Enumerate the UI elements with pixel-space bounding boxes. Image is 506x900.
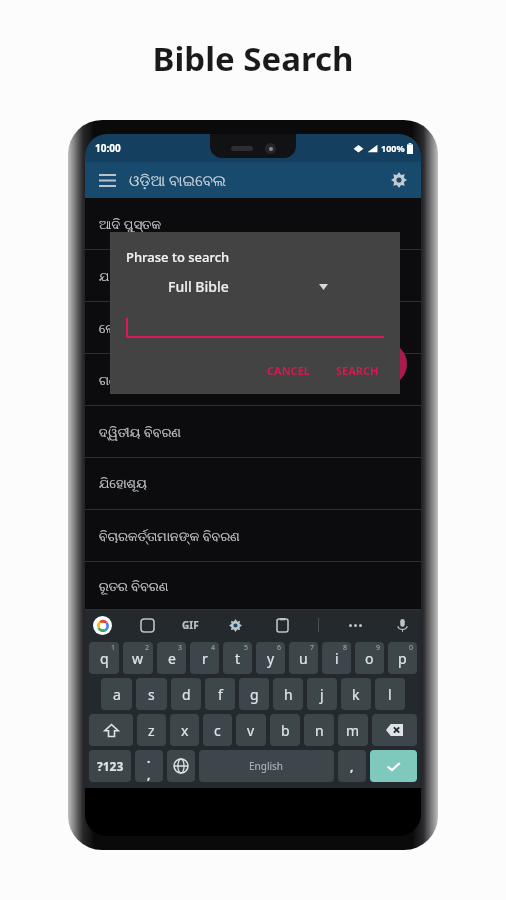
button[interactable]: Shift	[89, 714, 133, 746]
staticText: u	[299, 649, 308, 668]
button[interactable]: w	[123, 642, 153, 674]
staticText: e	[168, 649, 176, 668]
button[interactable]: ,	[338, 750, 366, 782]
staticText: 4	[211, 643, 216, 653]
staticText: x	[181, 721, 189, 740]
button[interactable]: ?123	[89, 750, 131, 782]
staticText: o	[365, 649, 374, 668]
staticText: g	[250, 685, 259, 704]
button[interactable]: .	[135, 750, 163, 782]
button[interactable]: Google	[93, 616, 112, 635]
button[interactable]	[126, 310, 384, 338]
staticText: 8	[343, 643, 348, 653]
staticText: s	[148, 685, 155, 704]
staticText: v	[247, 721, 255, 740]
staticText: ଗଣନା ପୁସ୍ତକ	[99, 371, 170, 389]
staticText: ଲେବୀୟ ପୁସ୍ତକ	[99, 319, 180, 337]
button[interactable]: Menu	[91, 164, 123, 196]
button[interactable]: ଆଦି ପୁସ୍ତକ	[85, 198, 421, 250]
button[interactable]: d	[171, 678, 201, 710]
button[interactable]: y	[256, 642, 285, 674]
button[interactable]: f	[205, 678, 235, 710]
staticText: l	[388, 685, 392, 704]
staticText: h	[284, 685, 293, 704]
button[interactable]: n	[304, 714, 334, 746]
button[interactable]: GIF	[182, 618, 199, 632]
button[interactable]: Backspace	[372, 714, 417, 746]
button[interactable]: English	[199, 750, 334, 782]
staticText: CANCEL	[267, 363, 310, 378]
button[interactable]: ବିଚାରକର୍ତ୍ତାମାନଙ୍କ ବିବରଣ	[85, 510, 421, 562]
staticText: q	[100, 649, 109, 668]
staticText: ଯାତ୍ରା ପୁସ୍ତକ	[99, 267, 173, 285]
button[interactable]: e	[157, 642, 186, 674]
button[interactable]: ଲେବୀୟ ପୁସ୍ତକ	[85, 302, 421, 354]
staticText: ?123	[97, 758, 124, 774]
button[interactable]: ଦ୍ୱିତୀୟ ବିବରଣ	[85, 406, 421, 458]
button[interactable]: Voice input	[391, 614, 413, 636]
staticText: b	[281, 721, 290, 740]
button[interactable]: c	[203, 714, 232, 746]
button[interactable]: More	[344, 614, 366, 636]
staticText: ଯିହୋଶୂୟ	[99, 478, 147, 491]
staticText: a	[113, 685, 121, 704]
button[interactable]: Settings	[383, 164, 415, 196]
staticText: SEARCH	[336, 363, 379, 378]
button[interactable]: t	[223, 642, 252, 674]
button[interactable]: Enter	[370, 750, 417, 782]
staticText: i	[335, 649, 339, 668]
staticText: c	[214, 721, 221, 740]
button[interactable]: b	[270, 714, 300, 746]
button[interactable]: p	[388, 642, 417, 674]
button[interactable]: k	[341, 678, 371, 710]
staticText: n	[315, 721, 324, 740]
button[interactable]: ଗଣନା ପୁସ୍ତକ	[85, 354, 421, 406]
button[interactable]: r	[190, 642, 219, 674]
staticText: ,	[147, 766, 151, 782]
button[interactable]: g	[239, 678, 269, 710]
button[interactable]: a	[101, 678, 132, 710]
staticText: ଆଦି ପୁସ୍ତକ	[99, 215, 161, 233]
staticText: Phrase to search	[126, 248, 230, 266]
button[interactable]: Change language	[167, 750, 195, 782]
button[interactable]: ଯିହୋଶୂୟ	[85, 458, 421, 510]
button[interactable]: ରୂତର ବିବରଣ	[85, 562, 421, 610]
button[interactable]: Clipboard	[271, 614, 293, 636]
staticText: 100%	[381, 142, 405, 154]
button[interactable]: z	[137, 714, 166, 746]
staticText: Bible Search	[152, 36, 354, 81]
staticText: 10:00	[95, 141, 121, 155]
button[interactable]: s	[136, 678, 167, 710]
staticText: p	[398, 649, 407, 668]
button[interactable]: Open book	[363, 342, 407, 386]
button[interactable]: i	[322, 642, 351, 674]
button[interactable]: l	[375, 678, 405, 710]
button[interactable]: v	[236, 714, 266, 746]
button[interactable]: SEARCH	[327, 357, 388, 384]
button[interactable]: m	[338, 714, 368, 746]
button[interactable]: j	[307, 678, 337, 710]
staticText: m	[346, 721, 360, 740]
button[interactable]: u	[289, 642, 318, 674]
button[interactable]: Settings	[224, 614, 246, 636]
staticText: ବିଚାରକର୍ତ୍ତାମାନଙ୍କ ବିବରଣ	[99, 527, 241, 545]
button[interactable]: h	[273, 678, 303, 710]
staticText: ଓଡ଼ିଆ ବାଇବେଲ	[129, 170, 226, 190]
staticText: 9	[376, 643, 381, 653]
button[interactable]: x	[170, 714, 199, 746]
button[interactable]: ଯାତ୍ରା ପୁସ୍ତକ	[85, 250, 421, 302]
staticText: ,	[350, 758, 354, 774]
staticText: w	[132, 649, 144, 668]
button[interactable]: Full Bible	[168, 277, 328, 296]
staticText: GIF	[182, 618, 199, 632]
staticText: 0	[409, 643, 414, 653]
staticText: j	[320, 685, 324, 704]
staticText: 1	[111, 643, 116, 653]
button[interactable]: o	[355, 642, 384, 674]
staticText: 6	[277, 643, 282, 653]
staticText: 2	[145, 643, 150, 653]
staticText: r	[202, 649, 208, 668]
button[interactable]: sticker	[136, 614, 158, 636]
button[interactable]: q	[89, 642, 119, 674]
button[interactable]: CANCEL	[258, 357, 319, 384]
